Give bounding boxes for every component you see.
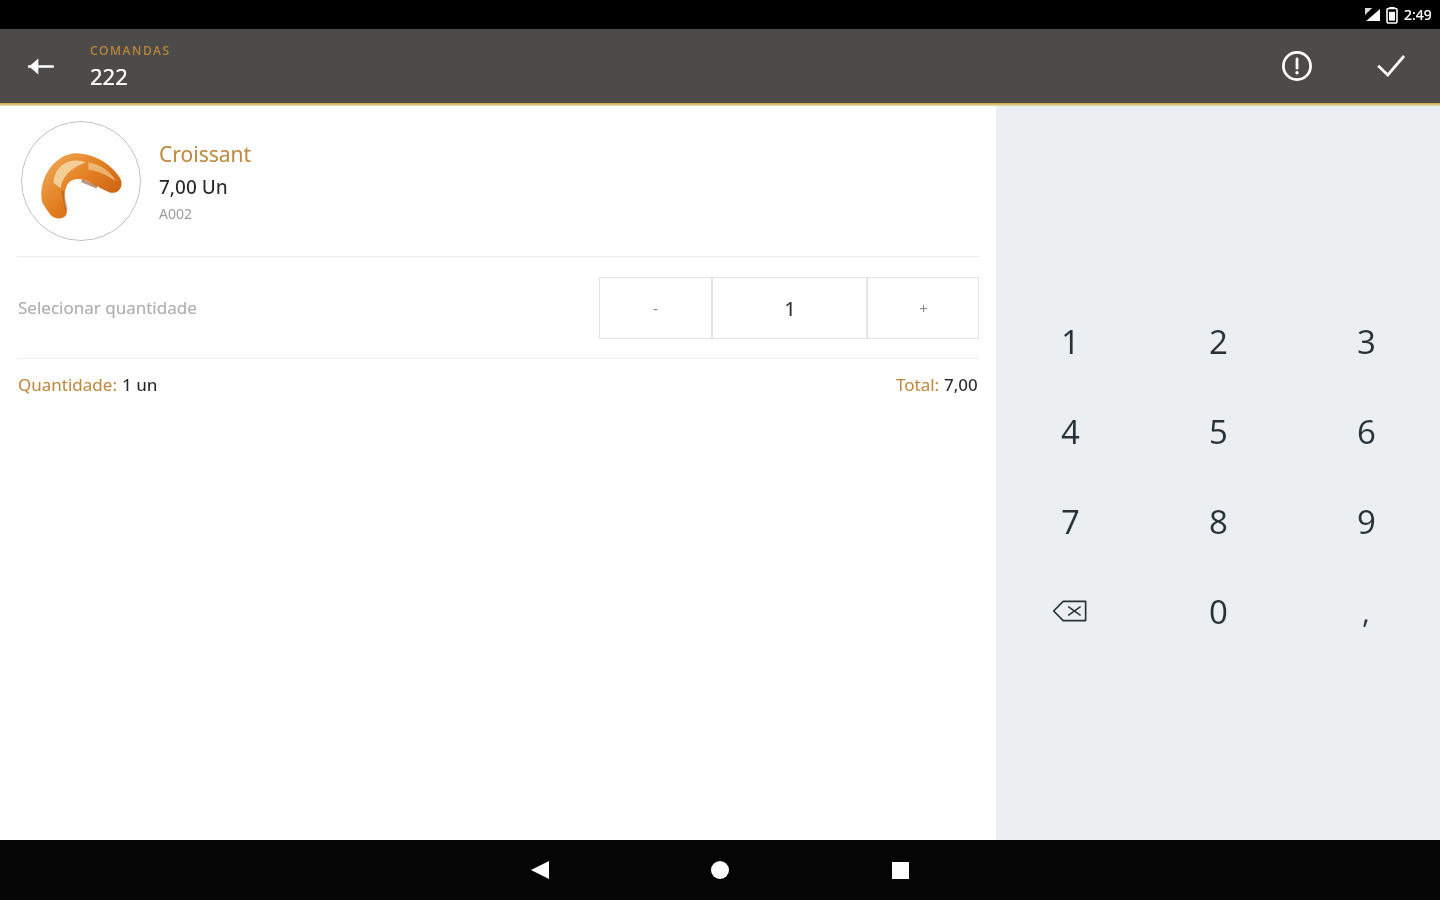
staticText: 8 <box>1209 499 1228 544</box>
button[interactable]: 5 <box>1144 386 1292 476</box>
staticText: 1 un <box>122 373 158 396</box>
button[interactable]: Recent apps <box>855 840 945 900</box>
staticText: 7 <box>1061 499 1080 544</box>
button[interactable]: 6 <box>1292 386 1440 476</box>
button[interactable]: 0 <box>1144 566 1292 656</box>
staticText: 3 <box>1357 319 1376 364</box>
button[interactable]: Home <box>675 840 765 900</box>
button[interactable]: , <box>1292 566 1440 656</box>
staticText: 222 <box>90 61 128 91</box>
staticText: - <box>653 298 658 318</box>
button[interactable]: 1 <box>996 296 1144 386</box>
button[interactable]: Backspace <box>996 566 1144 656</box>
staticText: , <box>1362 591 1371 632</box>
staticText: 1 <box>1061 319 1080 364</box>
staticText: 2:49 <box>1404 5 1432 24</box>
button[interactable]: 4 <box>996 386 1144 476</box>
staticText: 4 <box>1061 409 1080 454</box>
staticText: 7,00 Un <box>159 174 228 200</box>
staticText: 2 <box>1209 319 1228 364</box>
button[interactable]: Croissant <box>0 106 996 256</box>
staticText: 7,00 <box>944 373 978 396</box>
button[interactable]: 7 <box>996 476 1144 566</box>
button[interactable]: 2 <box>1144 296 1292 386</box>
staticText: Selecionar quantidade <box>18 296 197 319</box>
button[interactable]: 1 <box>712 277 867 339</box>
staticText: Total: <box>896 373 944 396</box>
button[interactable]: 3 <box>1292 296 1440 386</box>
button[interactable]: Confirm <box>1364 39 1418 93</box>
button[interactable]: Back <box>495 840 585 900</box>
staticText: 5 <box>1209 409 1228 454</box>
button[interactable]: 9 <box>1292 476 1440 566</box>
staticText: Croissant <box>159 140 252 169</box>
staticText: A002 <box>159 204 192 223</box>
staticText: 9 <box>1357 499 1376 544</box>
button[interactable]: 8 <box>1144 476 1292 566</box>
staticText: 0 <box>1209 589 1228 634</box>
staticText: + <box>919 298 928 318</box>
button[interactable]: Back <box>14 40 66 92</box>
button[interactable]: + <box>867 277 979 339</box>
staticText: 1 <box>784 295 796 322</box>
button[interactable]: - <box>599 277 712 339</box>
button[interactable]: Information <box>1270 39 1324 93</box>
staticText: Quantidade: <box>18 373 122 396</box>
staticText: COMANDAS <box>90 42 171 58</box>
staticText: 6 <box>1357 409 1376 454</box>
